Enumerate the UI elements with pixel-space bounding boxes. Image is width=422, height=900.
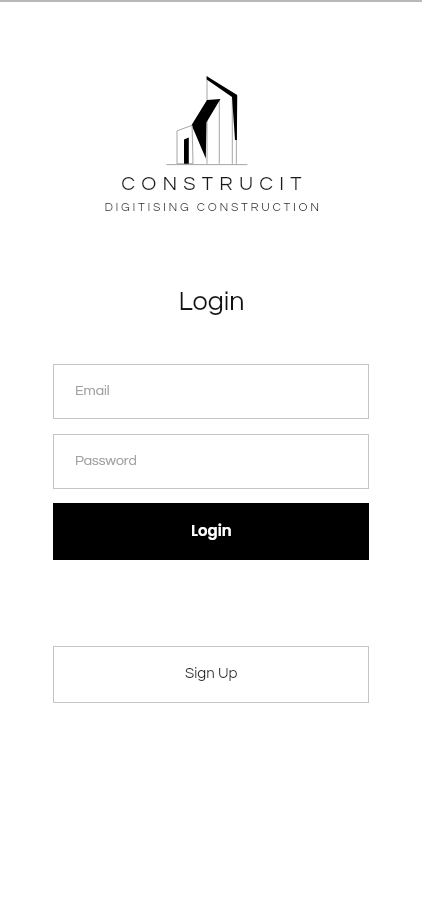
staticText: CONSTRUCIT (121, 174, 308, 195)
staticText: Login (178, 288, 245, 316)
button[interactable]: Password (53, 434, 369, 489)
staticText: Email (75, 384, 110, 398)
other: ConstructIT logo (0, 0, 422, 170)
staticText: Login (191, 520, 232, 541)
staticText: DIGITISING CONSTRUCTION (104, 201, 322, 213)
button[interactable]: Email (53, 364, 369, 419)
button[interactable]: Login (53, 503, 369, 560)
button[interactable]: Sign Up (53, 646, 369, 703)
staticText: Sign Up (185, 666, 238, 681)
staticText: Password (75, 454, 137, 468)
